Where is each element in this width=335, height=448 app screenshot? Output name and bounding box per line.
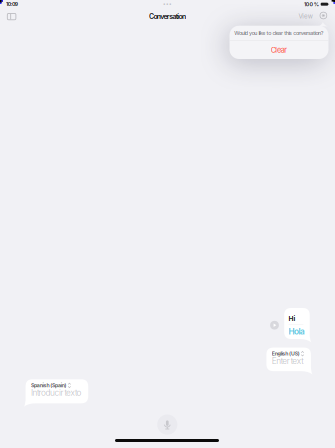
staticText: View — [298, 12, 313, 20]
staticText: 100 % — [304, 1, 319, 7]
staticText: Would you like to clear this conversatio… — [234, 30, 324, 36]
staticText: 10:09 — [6, 1, 18, 7]
staticText: Hi — [289, 314, 295, 323]
button[interactable]: View Options — [318, 10, 329, 21]
staticText: Conversation — [149, 12, 186, 21]
button[interactable]: View — [295, 10, 315, 22]
button[interactable]: Play Translation — [269, 320, 280, 331]
staticText: Clear — [271, 45, 287, 54]
button[interactable]: Record — [157, 414, 177, 435]
staticText: Hola — [289, 326, 305, 336]
staticText: ••• — [163, 1, 172, 7]
button[interactable]: Clear — [229, 41, 328, 59]
staticText: English (US) — [272, 351, 300, 357]
button[interactable]: Show Sidebar — [5, 10, 19, 24]
staticText: Introducir texto — [31, 388, 81, 398]
staticText: Spanish (Spain) — [31, 382, 67, 389]
staticText: Enter text — [272, 356, 303, 366]
